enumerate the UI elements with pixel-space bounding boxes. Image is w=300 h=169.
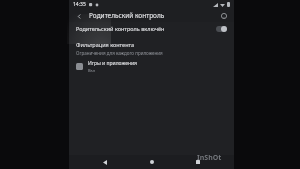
button[interactable]: Назад	[74, 11, 84, 21]
staticText: Ограничения для каждого приложения	[76, 50, 163, 56]
staticText: Родительский контроль	[89, 11, 165, 20]
button[interactable]: Игры и приложения	[69, 58, 234, 74]
button[interactable]: Главный экран	[142, 155, 162, 169]
staticText: Игры и приложения	[88, 60, 138, 67]
staticText: Родительский контроль включён	[76, 25, 210, 32]
button[interactable]: Родительский контроль включён	[69, 22, 234, 35]
staticText: Вкл	[88, 68, 96, 73]
button[interactable]: Назад	[95, 155, 115, 169]
staticText: Фильтрация контента	[76, 41, 135, 48]
staticText: InShOt	[197, 153, 222, 163]
staticText: 14:35	[73, 1, 86, 8]
button[interactable]: Недавние приложения	[188, 155, 208, 169]
button[interactable]: Справка	[219, 11, 229, 21]
